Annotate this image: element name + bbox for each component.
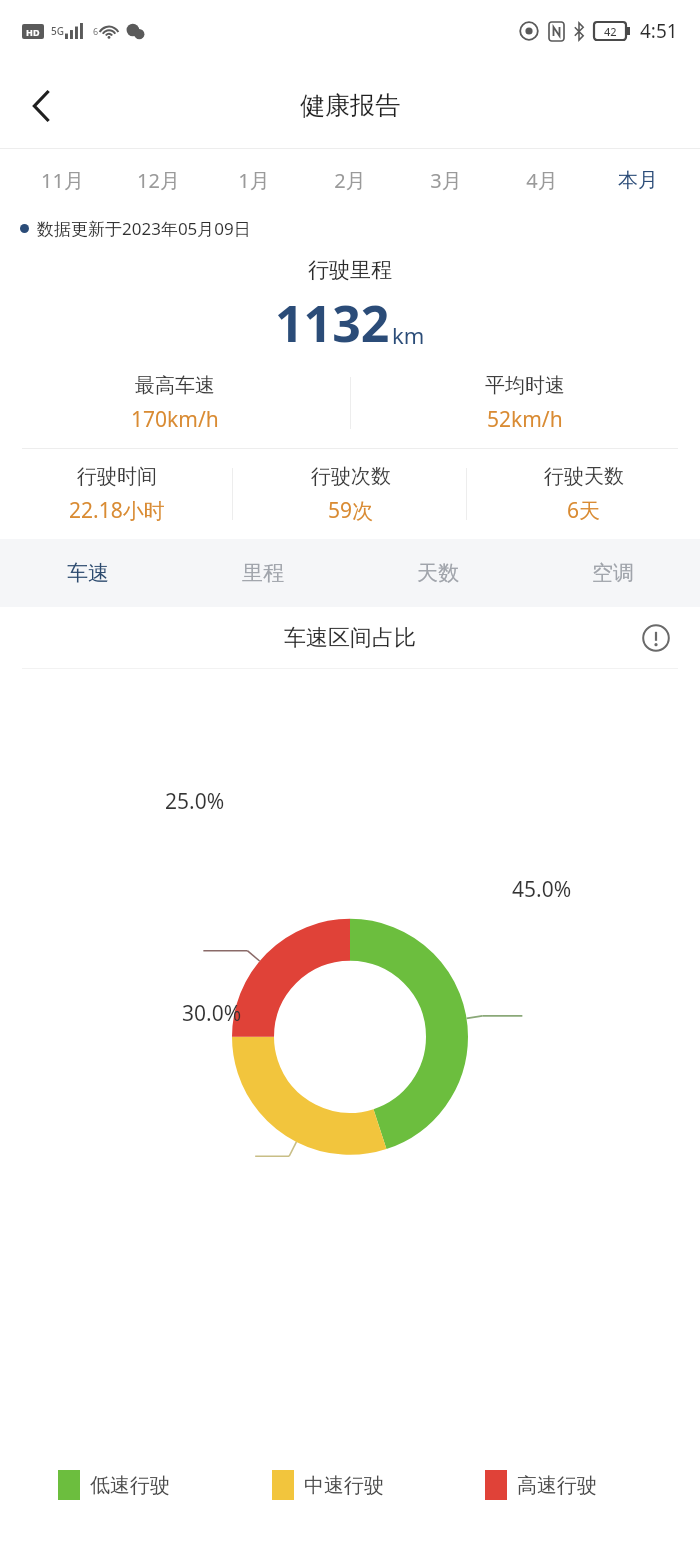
staticText: 健康报告 bbox=[300, 90, 400, 121]
staticText: 6天 bbox=[567, 496, 601, 525]
staticText: 5G bbox=[51, 24, 64, 38]
staticText: 2月 bbox=[334, 167, 366, 194]
staticText: 行驶时间 bbox=[77, 464, 157, 489]
staticText: 本月 bbox=[618, 168, 658, 193]
staticText: 车速区间占比 bbox=[284, 624, 416, 652]
button[interactable]: 高速行驶 bbox=[457, 1470, 670, 1500]
button[interactable]: 行驶天数 bbox=[467, 449, 700, 539]
button[interactable]: 中速行驶 bbox=[244, 1470, 457, 1500]
button[interactable]: 3月 bbox=[398, 149, 494, 211]
staticText: 空调 bbox=[592, 560, 634, 586]
staticText: 低速行驶 bbox=[90, 1473, 170, 1498]
button[interactable]: 4月 bbox=[494, 149, 590, 211]
button[interactable]: 11月 bbox=[14, 149, 110, 211]
staticText: 行驶里程 bbox=[308, 257, 392, 283]
staticText: 1月 bbox=[238, 167, 270, 194]
staticText: 平均时速 bbox=[485, 373, 565, 398]
staticText: HD bbox=[26, 26, 40, 38]
staticText: 11月 bbox=[41, 167, 84, 194]
button[interactable]: 平均时速 bbox=[350, 357, 700, 449]
staticText: 4月 bbox=[526, 167, 558, 194]
button[interactable]: 1月 bbox=[206, 149, 302, 211]
staticText: 车速 bbox=[67, 560, 109, 586]
button[interactable]: 12月 bbox=[110, 149, 206, 211]
staticText: 170km/h bbox=[131, 405, 219, 434]
button[interactable]: 空调 bbox=[525, 539, 700, 607]
staticText: 52km/h bbox=[487, 405, 563, 434]
staticText: 25.0% bbox=[165, 787, 225, 816]
staticText: 行驶天数 bbox=[544, 464, 624, 489]
button[interactable]: 里程 bbox=[175, 539, 350, 607]
staticText: 1132 bbox=[275, 289, 390, 357]
staticText: 30.0% bbox=[182, 999, 242, 1028]
staticText: 59次 bbox=[328, 496, 374, 525]
button[interactable]: Info bbox=[634, 616, 678, 660]
button[interactable]: 本月 bbox=[590, 149, 686, 211]
staticText: 行驶次数 bbox=[311, 464, 391, 489]
staticText: 最高车速 bbox=[135, 373, 215, 398]
staticText: 4:51 bbox=[640, 18, 678, 44]
staticText: 天数 bbox=[417, 560, 459, 586]
staticText: 42 bbox=[604, 24, 617, 39]
button[interactable]: 2月 bbox=[302, 149, 398, 211]
button[interactable]: Back bbox=[14, 79, 68, 133]
staticText: 45.0% bbox=[512, 875, 572, 904]
button[interactable]: 天数 bbox=[350, 539, 525, 607]
button[interactable]: 车速 bbox=[0, 539, 175, 607]
staticText: 3月 bbox=[430, 167, 462, 194]
staticText: 高速行驶 bbox=[517, 1473, 597, 1498]
staticText: 数据更新于2023年05月09日 bbox=[37, 217, 251, 240]
button[interactable]: 行驶次数 bbox=[234, 449, 467, 539]
staticText: 12月 bbox=[137, 167, 180, 194]
button[interactable]: 最高车速 bbox=[0, 357, 350, 449]
button[interactable]: 低速行驶 bbox=[30, 1470, 244, 1500]
staticText: 中速行驶 bbox=[304, 1473, 384, 1498]
staticText: 22.18小时 bbox=[69, 496, 165, 525]
button[interactable]: 行驶时间 bbox=[0, 449, 234, 539]
staticText: 6 bbox=[93, 25, 99, 37]
staticText: km bbox=[392, 320, 425, 350]
staticText: 里程 bbox=[242, 560, 284, 586]
